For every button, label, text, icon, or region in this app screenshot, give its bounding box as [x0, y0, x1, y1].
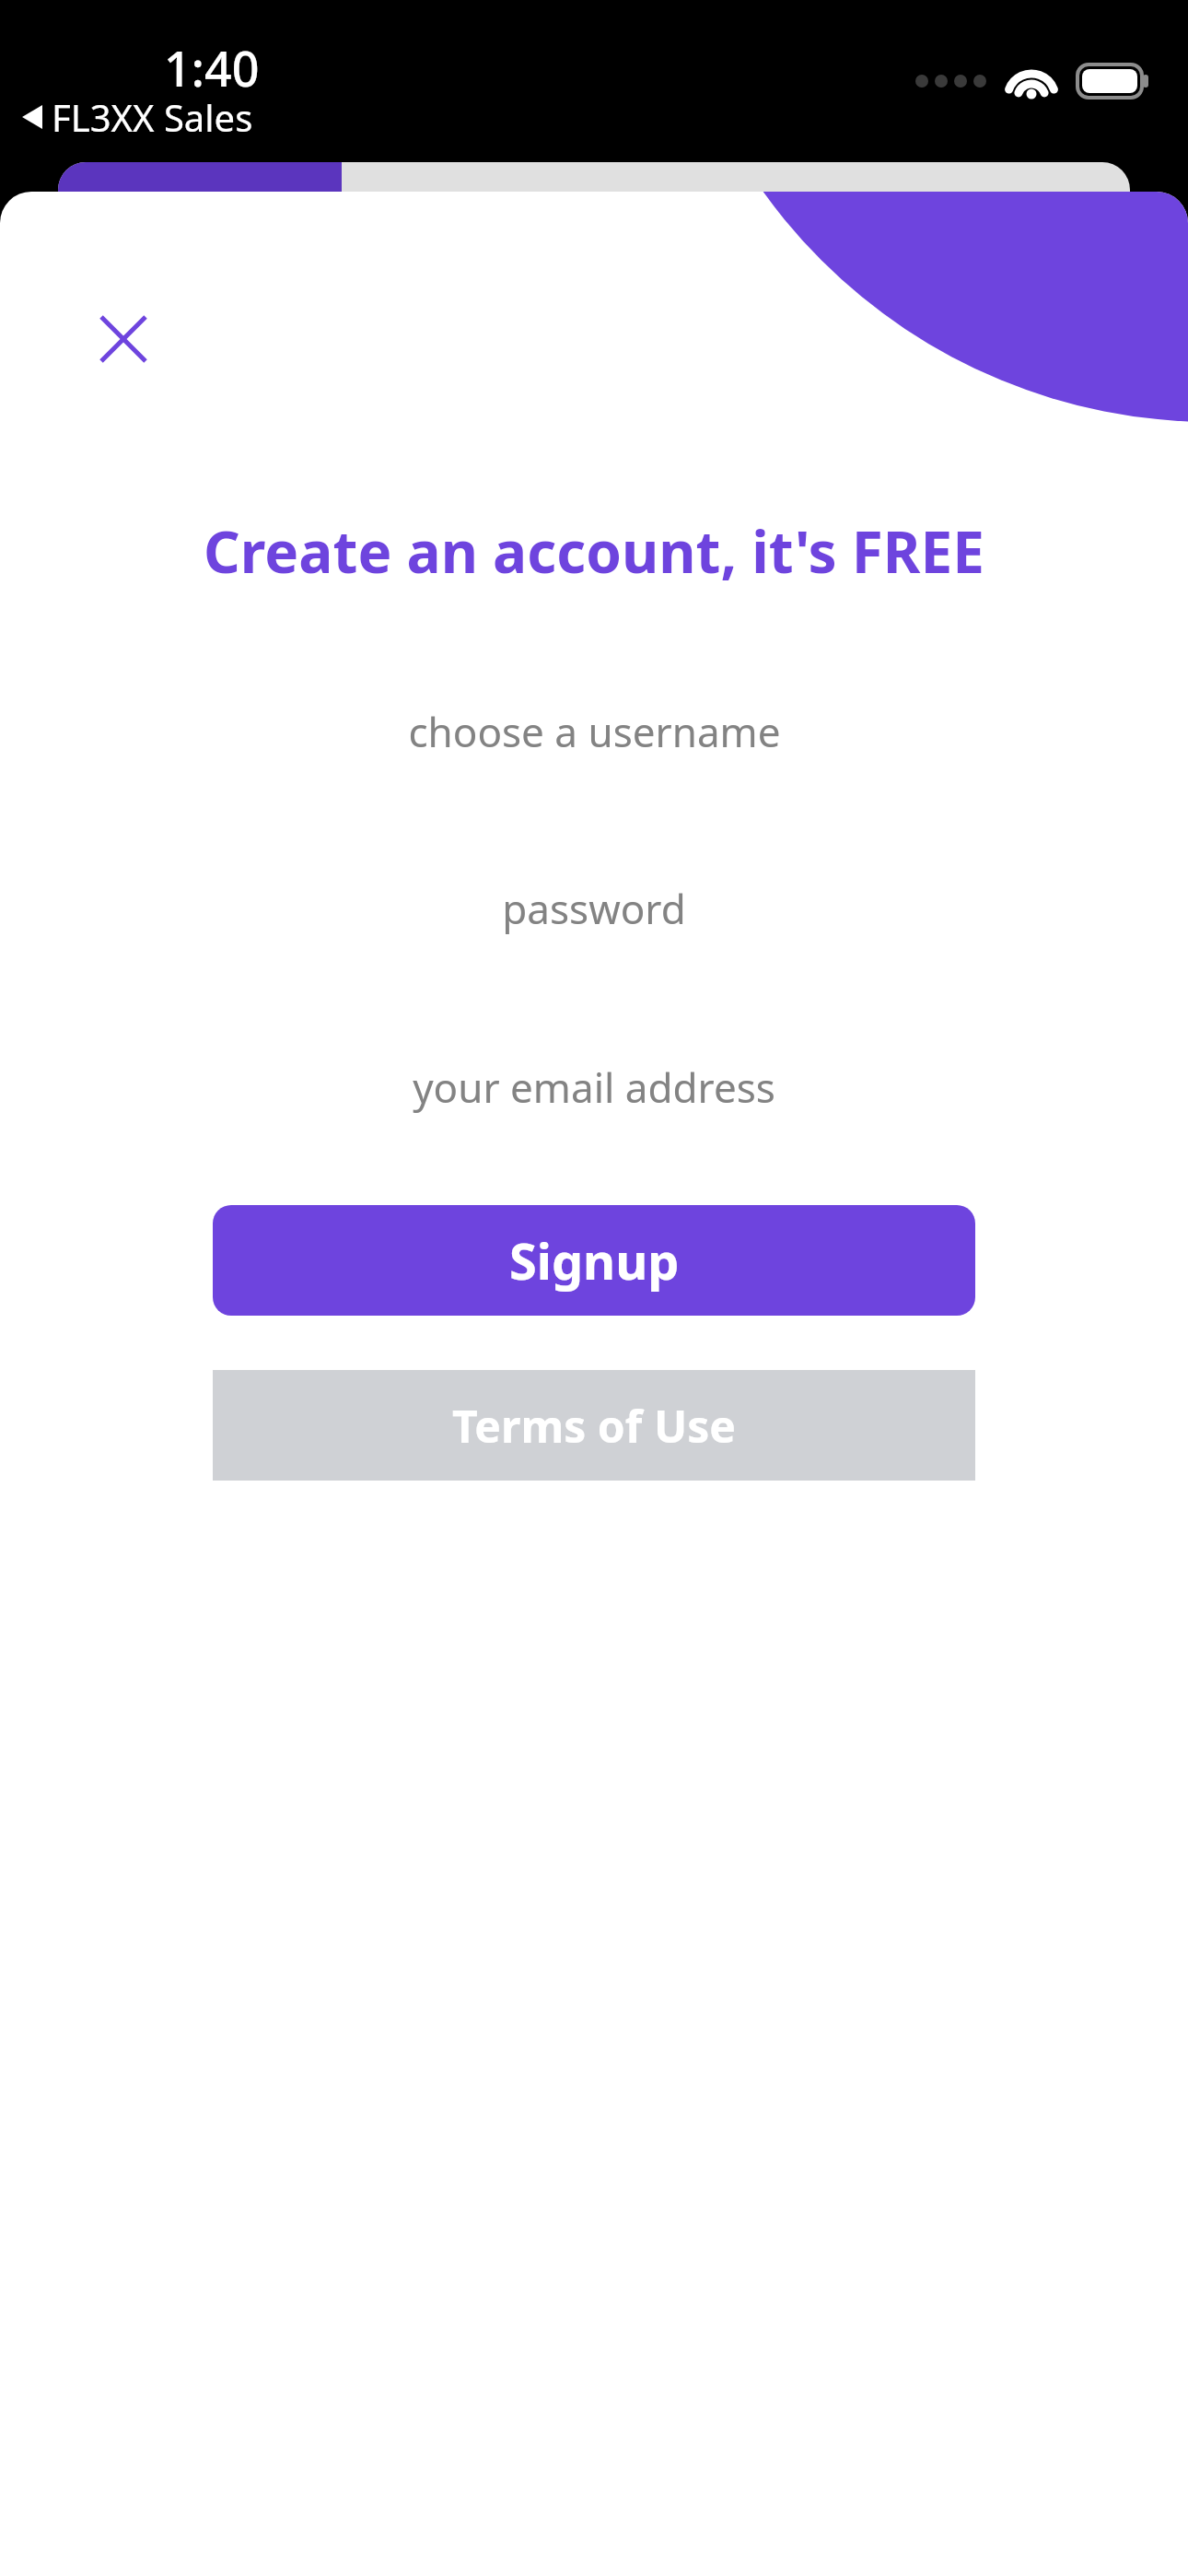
- button[interactable]: password: [0, 870, 1188, 947]
- staticText: Create an account, it's FREE: [204, 512, 984, 590]
- button[interactable]: Terms of Use: [213, 1370, 975, 1481]
- staticText: 1:40: [164, 35, 260, 100]
- button[interactable]: choose a username: [0, 693, 1188, 770]
- staticText: password: [502, 881, 686, 936]
- button[interactable]: Close: [88, 304, 158, 374]
- button[interactable]: your email address: [0, 1048, 1188, 1126]
- staticText: Terms of Use: [452, 1396, 736, 1456]
- staticText: choose a username: [408, 704, 781, 759]
- button[interactable]: Signup: [213, 1205, 975, 1316]
- staticText: FL3XX Sales: [52, 92, 253, 142]
- staticText: your email address: [413, 1060, 775, 1115]
- staticText: Signup: [509, 1226, 680, 1294]
